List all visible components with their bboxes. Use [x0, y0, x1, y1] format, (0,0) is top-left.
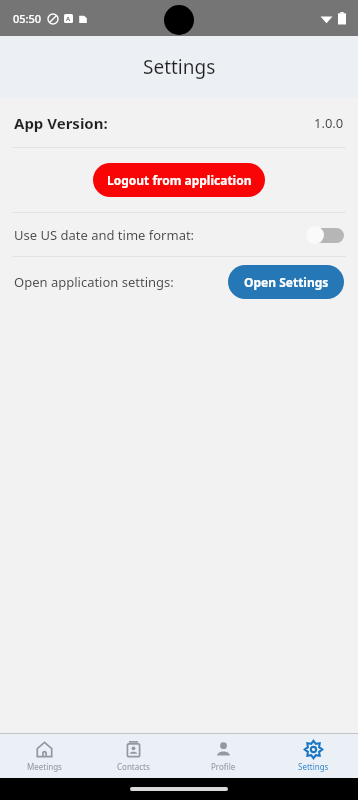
staticText: Meetings — [27, 761, 62, 772]
button[interactable]: Logout from application — [93, 163, 265, 197]
button[interactable]: Open Settings — [228, 265, 344, 299]
staticText: Use US date and time format: — [14, 226, 195, 244]
staticText: App Version: — [14, 113, 108, 133]
staticText: Logout from application — [107, 172, 252, 188]
staticText: A — [66, 15, 71, 23]
staticText: Profile — [211, 761, 236, 772]
button[interactable]: Contacts — [89, 734, 178, 778]
staticText: 05:50 — [13, 11, 42, 26]
staticText: Contacts — [117, 761, 150, 772]
staticText: Settings — [298, 761, 329, 772]
button[interactable]: Profile — [178, 734, 268, 778]
staticText: 1.0.0 — [314, 114, 344, 132]
staticText: Settings — [143, 54, 216, 80]
staticText: Open application settings: — [14, 273, 174, 291]
button[interactable]: Settings — [268, 734, 358, 778]
button[interactable]: Use US date and time format toggle — [304, 222, 344, 248]
staticText: Open Settings — [244, 274, 329, 290]
button[interactable]: Meetings — [0, 734, 89, 778]
